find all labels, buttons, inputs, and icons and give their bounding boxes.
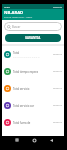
button[interactable]: Total servicio: [2, 80, 64, 97]
staticText: Claro: [4, 5, 10, 8]
staticText: NB-ARAD: [4, 10, 24, 16]
staticText: 00:00 hs: [53, 87, 62, 90]
button[interactable]: Buscar: [4, 22, 62, 31]
staticText: 4:32 PM: [53, 5, 62, 8]
staticText: 00:00 hs: [53, 104, 62, 107]
staticText: GARANTIA: [25, 36, 41, 40]
staticText: Total servicio: [13, 87, 30, 91]
button[interactable]: Total fuera de: [2, 114, 64, 131]
button[interactable]: Total servicio car: [2, 97, 64, 114]
staticText: -- -- -- -- -- -- -- -- -- -- -- -- --: [13, 56, 40, 59]
staticText: Total: [13, 51, 20, 55]
button[interactable]: Total: [2, 46, 64, 63]
button[interactable]: Home: [26, 139, 43, 148]
button[interactable]: Total tiempo espera: [2, 63, 64, 80]
staticText: Total servicio car: [13, 104, 34, 108]
staticText: Total tiempo espera: [13, 70, 39, 74]
staticText: Buscar: [12, 25, 21, 29]
button[interactable]: Recents: [8, 139, 26, 148]
button[interactable]: GARANTIA: [5, 34, 61, 42]
staticText: 00:00 hs: [53, 53, 62, 56]
button[interactable]: Back: [43, 139, 60, 148]
staticText: SUCUR ARGENTINA - LOGIS: [4, 16, 33, 19]
staticText: 00:00 hs: [53, 70, 62, 73]
staticText: 00:00 hs: [53, 121, 62, 124]
staticText: Total fuera de: [13, 121, 31, 125]
